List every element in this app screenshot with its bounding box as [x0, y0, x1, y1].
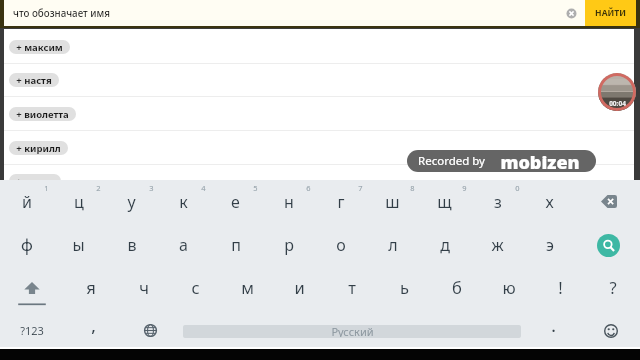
button[interactable]: + кирилл — [4, 131, 634, 165]
button[interactable]: НАЙТИ — [585, 0, 636, 26]
staticText: п — [231, 234, 241, 256]
staticText: э — [546, 234, 554, 256]
button[interactable]: о — [314, 223, 367, 266]
staticText: я — [86, 276, 96, 298]
staticText: 8 — [410, 183, 415, 193]
staticText: + виолетта — [16, 108, 69, 121]
staticText: л — [388, 234, 398, 256]
button[interactable]: т — [325, 265, 378, 308]
staticText: ю — [502, 276, 516, 298]
button[interactable]: щ — [418, 179, 471, 224]
button[interactable]: з — [471, 179, 524, 224]
button[interactable]: что обозначает имя — [4, 0, 585, 26]
staticText: а — [179, 234, 188, 256]
staticText: 00:04 — [609, 99, 626, 108]
button[interactable]: Clear query — [566, 8, 577, 19]
button[interactable]: Русский — [183, 325, 521, 338]
button[interactable]: в — [105, 223, 158, 266]
staticText: 6 — [306, 183, 311, 193]
button[interactable]: ф — [0, 223, 53, 266]
button[interactable]: р — [262, 223, 315, 266]
staticText: НАЙТИ — [595, 7, 626, 19]
staticText: ы — [72, 234, 85, 256]
button[interactable]: + настя — [4, 63, 634, 97]
staticText: 0 — [515, 183, 520, 193]
button[interactable]: ч — [117, 265, 170, 308]
staticText: , — [91, 314, 96, 337]
button[interactable]: н — [262, 179, 315, 224]
button[interactable]: е — [209, 179, 262, 224]
button[interactable]: Emoji — [586, 309, 636, 352]
staticText: у — [127, 191, 136, 213]
staticText: + настя — [16, 74, 52, 87]
button[interactable]: й — [0, 179, 53, 224]
button[interactable]: ю — [482, 265, 535, 308]
button[interactable]: м — [221, 265, 274, 308]
staticText: + кирилл — [16, 142, 61, 155]
button[interactable]: + виолетта — [4, 97, 634, 131]
staticText: г — [337, 191, 345, 213]
staticText: ! — [558, 276, 563, 298]
button[interactable]: д — [418, 223, 471, 266]
button[interactable]: с — [169, 265, 222, 308]
staticText: 3 — [149, 183, 154, 193]
button[interactable]: . — [531, 309, 576, 352]
button[interactable]: Backspace — [582, 180, 635, 223]
staticText: к — [179, 191, 188, 213]
button[interactable]: к — [157, 179, 210, 224]
staticText: ь — [400, 276, 409, 298]
button[interactable]: Search — [582, 224, 635, 267]
staticText: б — [452, 276, 462, 298]
staticText: ф — [21, 234, 33, 256]
button[interactable]: л — [366, 223, 419, 266]
staticText: ч — [139, 276, 149, 298]
staticText: что обозначает имя — [13, 7, 110, 20]
button[interactable]: + максим — [4, 30, 634, 64]
button[interactable]: я — [64, 265, 117, 308]
staticText: и — [294, 276, 305, 298]
button[interactable]: э — [523, 223, 576, 266]
staticText: Русский — [331, 325, 374, 337]
staticText: ц — [74, 191, 84, 213]
button[interactable]: ш — [366, 179, 419, 224]
button[interactable]: ы — [52, 223, 105, 266]
staticText: ш — [385, 191, 400, 213]
staticText: е — [231, 191, 240, 213]
staticText: ? — [609, 276, 617, 298]
staticText: о — [336, 234, 346, 256]
button[interactable]: Change keyboard language — [128, 309, 173, 352]
staticText: . — [551, 314, 556, 337]
button[interactable]: г — [314, 179, 367, 224]
button[interactable]: Screen recorder — [598, 73, 636, 111]
staticText: ?123 — [20, 323, 44, 338]
button[interactable]: ! — [534, 265, 587, 308]
staticText: в — [127, 234, 137, 256]
button[interactable]: х — [523, 179, 576, 224]
button[interactable]: у — [105, 179, 158, 224]
staticText: т — [348, 276, 356, 298]
staticText: mobizen — [500, 150, 580, 172]
staticText: 5 — [253, 183, 258, 193]
button[interactable]: ?123 — [0, 309, 64, 352]
button[interactable]: + алина — [4, 164, 634, 198]
staticText: 2 — [96, 183, 101, 193]
staticText: й — [22, 191, 32, 213]
button[interactable]: ь — [378, 265, 431, 308]
button[interactable]: и — [273, 265, 326, 308]
staticText: з — [494, 191, 502, 213]
button[interactable]: п — [209, 223, 262, 266]
staticText: 7 — [358, 183, 363, 193]
button[interactable]: , — [71, 309, 116, 352]
staticText: 1 — [44, 183, 49, 193]
button[interactable]: б — [430, 265, 483, 308]
staticText: 9 — [462, 183, 467, 193]
staticText: р — [284, 234, 294, 256]
staticText: Recorded by — [418, 153, 485, 169]
button[interactable]: ц — [52, 179, 105, 224]
button[interactable]: ? — [586, 265, 639, 308]
staticText: 4 — [201, 183, 206, 193]
staticText: + максим — [16, 41, 63, 54]
button[interactable]: ж — [471, 223, 524, 266]
button[interactable]: а — [157, 223, 210, 266]
button[interactable]: Shift — [5, 265, 58, 308]
